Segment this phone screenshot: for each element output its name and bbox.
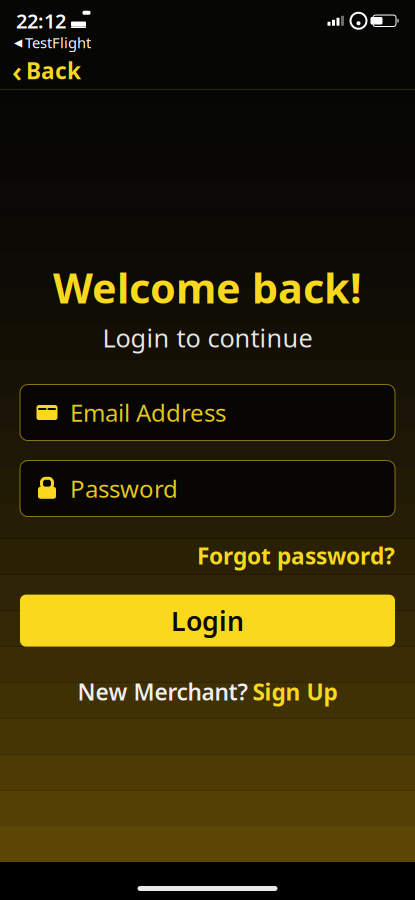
staticText: Welcome back!	[53, 260, 362, 315]
staticText: ◀	[14, 36, 22, 48]
staticText: Sign Up	[252, 677, 337, 707]
staticText: New Merchant?	[77, 677, 247, 707]
staticText: Password	[70, 473, 178, 504]
staticText: TestFlight	[25, 33, 91, 52]
button[interactable]: ‹	[0, 45, 93, 96]
button[interactable]: Login	[20, 595, 395, 647]
button[interactable]: Forgot password?	[197, 536, 395, 575]
staticText: Email Address	[70, 397, 226, 428]
staticText: 22:12	[16, 7, 66, 34]
staticText: ‹	[12, 51, 22, 90]
button[interactable]: New Merchant?	[67, 671, 347, 713]
staticText: Back	[26, 55, 81, 85]
staticText: Login	[171, 603, 244, 638]
staticText: Login to continue	[102, 321, 312, 354]
staticText: Forgot password?	[197, 540, 395, 571]
button[interactable]: Password	[0, 460, 415, 516]
button[interactable]: Email Address	[0, 384, 415, 440]
